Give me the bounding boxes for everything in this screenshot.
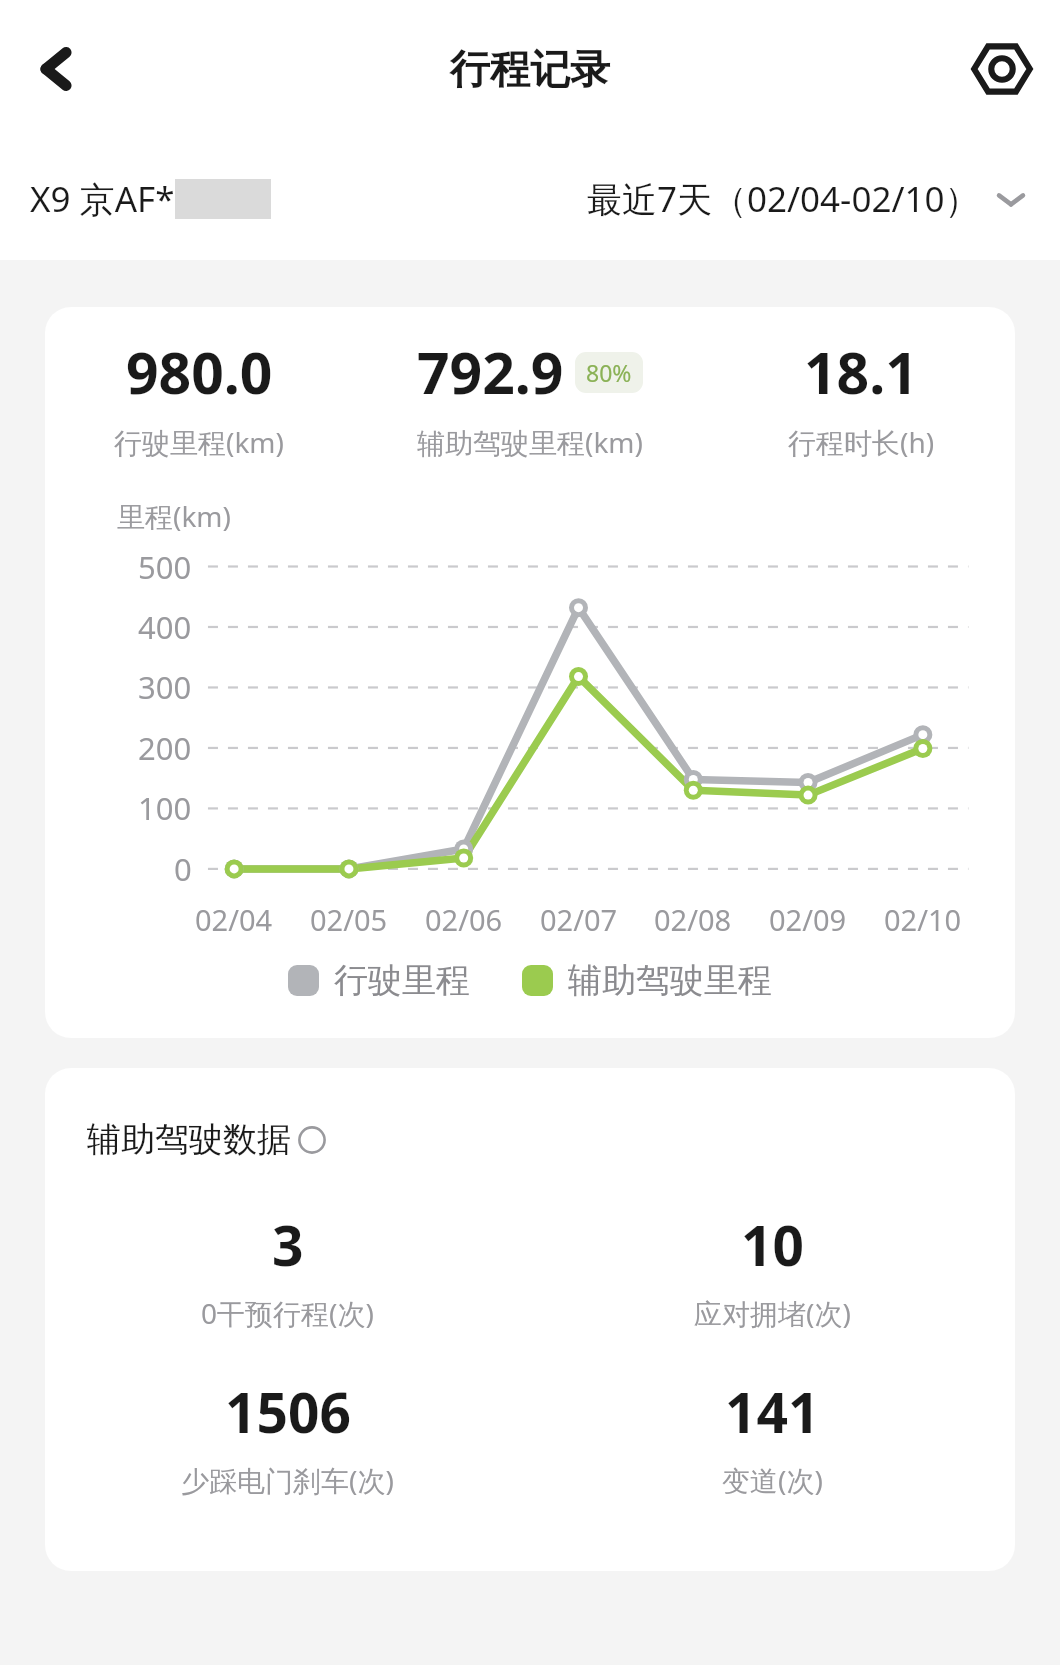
button[interactable]: X9 京AF* xyxy=(30,175,271,223)
button[interactable]: 792.9 xyxy=(353,333,707,461)
staticText: 变道(次) xyxy=(722,1461,823,1499)
staticText: 辅助驾驶数据 xyxy=(87,1118,291,1161)
button[interactable]: 最近7天（02/04-02/10） xyxy=(587,175,1030,223)
staticText: 少踩电门刹车(次) xyxy=(181,1461,394,1499)
button[interactable]: 辅助驾驶数据 xyxy=(87,1118,326,1161)
other: Info xyxy=(298,1126,326,1154)
staticText: 200 xyxy=(138,727,192,769)
staticText: 792.9 xyxy=(417,333,564,411)
staticText: 02/04 xyxy=(195,900,273,939)
button[interactable]: 1506 xyxy=(45,1374,530,1499)
staticText: 02/08 xyxy=(654,900,732,939)
button[interactable]: Back xyxy=(18,31,94,107)
staticText: 1506 xyxy=(225,1374,351,1449)
staticText: 应对拥堵(次) xyxy=(694,1294,851,1332)
button[interactable]: 辅助驾驶里程 xyxy=(522,959,772,1002)
staticText: 02/09 xyxy=(769,900,847,939)
button[interactable]: 141 xyxy=(530,1374,1015,1499)
button[interactable]: 行驶里程 xyxy=(288,959,470,1002)
staticText: 辅助驾驶里程(km) xyxy=(417,423,643,461)
staticText: 18.1 xyxy=(804,333,918,411)
staticText: 0干预行程(次) xyxy=(201,1294,374,1332)
staticText: 100 xyxy=(138,787,192,829)
staticText: 行驶里程 xyxy=(334,959,470,1002)
staticText: 行程时长(h) xyxy=(788,423,935,461)
staticText: X9 京AF* xyxy=(30,175,175,223)
staticText: 80% xyxy=(586,357,632,388)
button[interactable]: 10 xyxy=(530,1207,1015,1332)
staticText: 辅助驾驶里程 xyxy=(568,959,772,1002)
button[interactable]: 18.1 xyxy=(707,333,1015,461)
staticText: 141 xyxy=(725,1374,820,1449)
staticText: 行驶里程(km) xyxy=(114,423,284,461)
staticText: 02/07 xyxy=(540,900,618,939)
staticText: 02/05 xyxy=(310,900,388,939)
staticText: 10 xyxy=(741,1207,804,1282)
staticText: 02/10 xyxy=(884,900,962,939)
button[interactable]: 980.0 xyxy=(45,333,353,461)
staticText: 3 xyxy=(272,1207,304,1282)
staticText: 里程(km) xyxy=(117,497,231,535)
staticText: 0 xyxy=(174,848,192,890)
button[interactable]: 3 xyxy=(45,1207,530,1332)
button[interactable]: Settings xyxy=(964,31,1040,107)
staticText: 最近7天（02/04-02/10） xyxy=(587,175,980,223)
staticText: 行程记录 xyxy=(450,44,610,94)
staticText: 400 xyxy=(138,606,192,648)
staticText: 300 xyxy=(138,666,192,708)
staticText: 980.0 xyxy=(126,333,273,411)
staticText: 500 xyxy=(138,546,192,588)
staticText: 02/06 xyxy=(425,900,503,939)
